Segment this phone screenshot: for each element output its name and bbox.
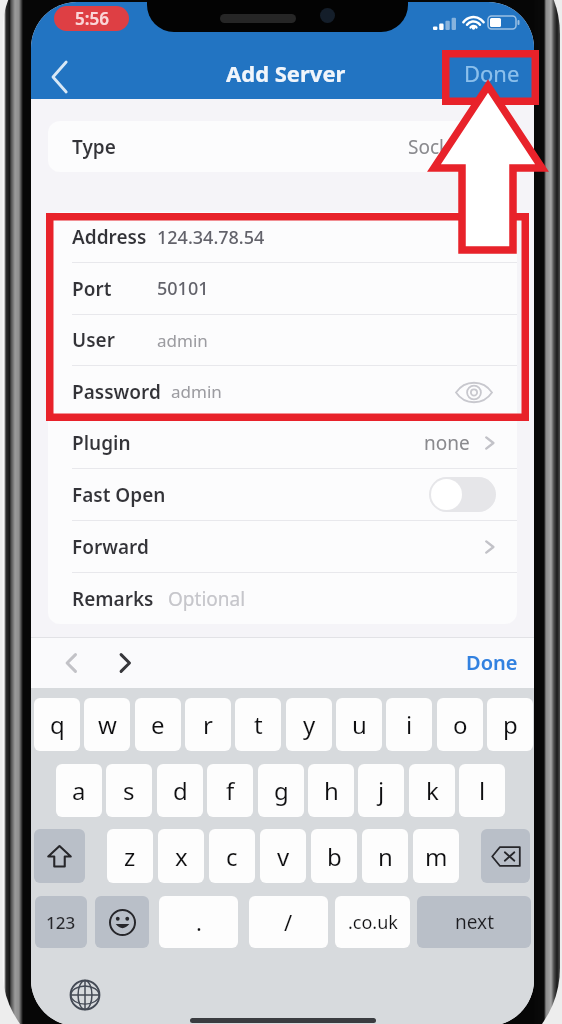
staticText: z <box>124 840 136 873</box>
button[interactable]: Change keyboard <box>65 975 105 1015</box>
staticText: y <box>303 708 316 741</box>
staticText: . <box>196 907 202 937</box>
staticText: s <box>123 774 135 807</box>
staticText: Remarks <box>72 586 154 612</box>
staticText: admin <box>171 380 222 403</box>
staticText: c <box>226 840 238 873</box>
button[interactable]: Type <box>48 121 517 172</box>
staticText: b <box>327 840 342 873</box>
button[interactable]: t <box>235 698 281 751</box>
button[interactable]: s <box>106 764 152 817</box>
button[interactable]: Emoji <box>95 896 149 948</box>
button[interactable]: Port <box>48 263 517 314</box>
button[interactable]: Password <box>48 366 517 417</box>
staticText: m <box>425 840 448 873</box>
staticText: d <box>173 774 188 807</box>
button[interactable]: n <box>362 829 408 883</box>
staticText: Socks5 <box>408 134 470 160</box>
button[interactable]: Fast Open toggle <box>429 477 496 512</box>
button[interactable]: User <box>48 315 517 365</box>
button[interactable]: j <box>358 764 404 817</box>
button[interactable]: Done <box>458 641 526 684</box>
button[interactable]: u <box>336 698 382 751</box>
staticText: admin <box>157 329 208 352</box>
staticText: .co.uk <box>348 910 398 935</box>
button[interactable]: Forward <box>48 521 517 572</box>
staticText: Fast Open <box>72 482 166 508</box>
staticText: t <box>254 708 263 741</box>
staticText: 50101 <box>157 276 209 301</box>
staticText: f <box>226 774 235 807</box>
button[interactable]: Shift <box>34 829 85 883</box>
button[interactable]: Back <box>31 51 87 103</box>
button[interactable]: d <box>157 764 203 817</box>
button[interactable]: z <box>107 829 153 883</box>
button[interactable]: f <box>207 764 253 817</box>
staticText: i <box>406 708 413 741</box>
staticText: Type <box>72 134 116 160</box>
staticText: o <box>453 708 468 741</box>
button[interactable]: Remarks <box>48 573 517 624</box>
staticText: w <box>98 708 117 741</box>
button[interactable]: Done <box>450 47 534 99</box>
button[interactable]: m <box>413 829 459 883</box>
staticText: Password <box>72 379 161 405</box>
staticText: Forward <box>72 534 149 560</box>
button[interactable]: g <box>258 764 304 817</box>
staticText: Optional <box>168 586 246 612</box>
staticText: g <box>274 774 289 807</box>
staticText: Done <box>464 58 520 88</box>
button[interactable]: .co.uk <box>335 896 410 948</box>
staticText: q <box>50 708 65 741</box>
staticText: v <box>277 840 290 873</box>
button[interactable]: o <box>437 698 483 751</box>
staticText: Port <box>72 276 112 302</box>
staticText: u <box>352 708 367 741</box>
staticText: a <box>72 774 86 807</box>
staticText: Plugin <box>72 430 131 456</box>
staticText: l <box>479 774 486 807</box>
button[interactable]: Address <box>48 212 517 262</box>
button[interactable]: Next field <box>104 642 146 684</box>
button[interactable]: q <box>34 698 80 751</box>
button[interactable]: h <box>308 764 354 817</box>
staticText: x <box>175 840 188 873</box>
button[interactable]: y <box>286 698 332 751</box>
button[interactable]: p <box>487 698 533 751</box>
button[interactable]: k <box>409 764 455 817</box>
staticText: 123 <box>46 911 76 934</box>
button[interactable]: i <box>386 698 432 751</box>
staticText: r <box>203 708 213 741</box>
staticText: Done <box>466 649 518 676</box>
staticText: none <box>424 430 470 456</box>
staticText: / <box>284 907 293 937</box>
button[interactable]: l <box>459 764 505 817</box>
staticText: next <box>455 909 494 935</box>
staticText: p <box>503 708 518 741</box>
button[interactable]: r <box>185 698 231 751</box>
staticText: User <box>72 327 115 353</box>
button[interactable]: 123 <box>35 896 87 948</box>
button[interactable]: b <box>311 829 357 883</box>
button[interactable]: x <box>158 829 204 883</box>
button[interactable]: next <box>417 896 531 948</box>
staticText: 124.34.78.54 <box>157 225 265 250</box>
button[interactable]: a <box>56 764 102 817</box>
staticText: Address <box>72 224 147 250</box>
staticText: j <box>378 774 385 807</box>
staticText: h <box>324 774 339 807</box>
button[interactable]: Previous field <box>50 642 92 684</box>
button[interactable]: v <box>260 829 306 883</box>
button[interactable]: Show password <box>453 371 495 413</box>
button[interactable]: / <box>249 896 328 948</box>
button[interactable]: e <box>135 698 181 751</box>
staticText: n <box>378 840 393 873</box>
button[interactable]: Plugin <box>48 418 517 468</box>
button[interactable]: c <box>209 829 255 883</box>
button[interactable]: Backspace <box>481 829 530 883</box>
button[interactable]: w <box>84 698 130 751</box>
button[interactable]: . <box>159 896 238 948</box>
staticText: e <box>151 708 165 741</box>
staticText: k <box>426 774 439 807</box>
staticText: 5:56 <box>75 7 109 30</box>
